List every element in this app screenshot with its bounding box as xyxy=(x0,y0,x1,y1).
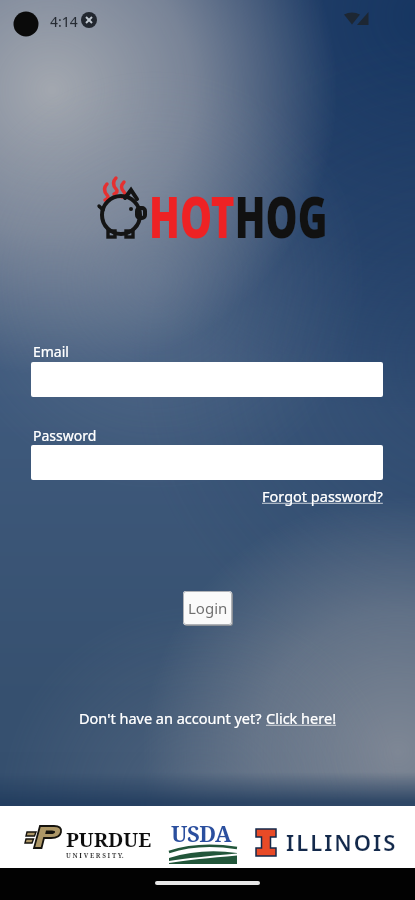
staticText: 4:14 xyxy=(50,12,78,31)
staticText: HOT xyxy=(149,178,235,254)
staticText: U N I V E R S I T Y. xyxy=(66,851,124,860)
staticText: Click here! xyxy=(266,708,337,728)
button[interactable]: Click here! xyxy=(266,708,337,728)
staticText: Login xyxy=(188,598,228,618)
staticText: Forgot password? xyxy=(262,486,383,506)
staticText: ILLINOIS xyxy=(286,827,398,857)
staticText: Email xyxy=(33,342,69,361)
staticText: Password xyxy=(33,426,97,445)
button[interactable]: Login xyxy=(183,591,232,625)
staticText: PURDUE xyxy=(66,826,152,853)
button[interactable]: Forgot password? xyxy=(262,486,383,506)
staticText: USDA xyxy=(171,818,232,848)
staticText: Don't have an account yet? xyxy=(79,708,266,728)
staticText: HOG xyxy=(235,178,328,254)
